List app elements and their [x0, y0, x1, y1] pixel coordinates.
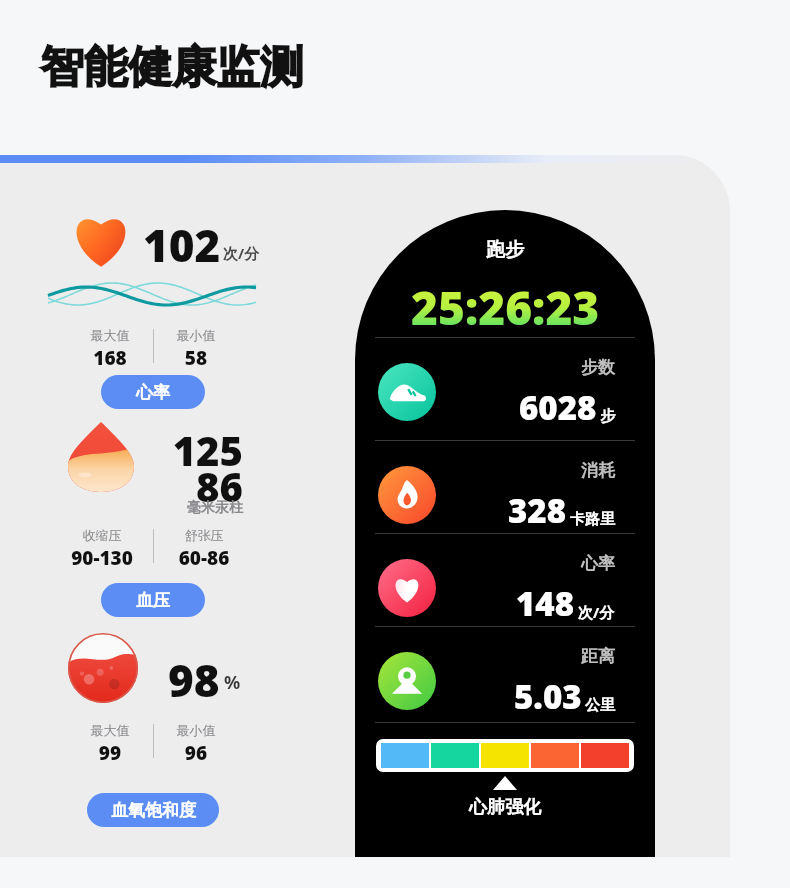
staticText: 步	[600, 407, 615, 426]
button[interactable]: 血氧饱和度	[87, 793, 219, 827]
staticText: 最小值	[161, 722, 231, 738]
staticText: 90-130	[59, 545, 145, 571]
staticText: 125	[145, 423, 243, 477]
staticText: 96	[161, 740, 231, 766]
other: 距离	[378, 652, 436, 710]
button[interactable]: 距离	[355, 636, 655, 726]
staticText: 5.03	[514, 674, 582, 719]
staticText: 步数	[455, 357, 615, 378]
staticText: 102	[143, 215, 221, 275]
staticText: 148	[516, 581, 575, 626]
staticText: 25:26:23	[411, 276, 600, 339]
button[interactable]: 血压	[101, 583, 205, 617]
staticText: 收缩压	[59, 527, 145, 543]
staticText: 99	[75, 740, 145, 766]
staticText: 卡路里	[570, 510, 615, 529]
button[interactable]: 步数	[355, 347, 655, 437]
button[interactable]: 心率	[355, 543, 655, 633]
staticText: 血压	[136, 590, 170, 611]
button[interactable]: 消耗	[355, 450, 655, 540]
staticText: 最小值	[161, 327, 231, 343]
staticText: 98	[168, 650, 220, 710]
staticText: 328	[508, 488, 567, 533]
other: 消耗	[378, 466, 436, 524]
staticText: 毫米汞柱	[145, 499, 243, 517]
staticText: 心肺强化	[355, 796, 655, 819]
staticText: 6028	[519, 385, 597, 430]
staticText: %	[224, 670, 241, 695]
staticText: 60-86	[161, 545, 247, 571]
other: 心率	[378, 559, 436, 617]
staticText: 168	[75, 345, 145, 371]
staticText: 心率	[455, 553, 615, 574]
staticText: 智能健康监测	[40, 40, 304, 95]
staticText: 次/分	[223, 243, 260, 263]
staticText: 86	[145, 459, 243, 513]
staticText: 血氧饱和度	[111, 800, 196, 821]
button[interactable]	[380, 743, 630, 768]
staticText: 公里	[585, 696, 615, 715]
staticText: 最大值	[75, 327, 145, 343]
staticText: 距离	[455, 646, 615, 667]
staticText: 次/分	[578, 602, 615, 622]
staticText: 消耗	[455, 460, 615, 481]
staticText: 58	[161, 345, 231, 371]
staticText: 跑步	[355, 238, 655, 262]
staticText: 舒张压	[161, 527, 247, 543]
other: 步数	[378, 363, 436, 421]
staticText: 最大值	[75, 722, 145, 738]
staticText: 心率	[136, 382, 170, 403]
button[interactable]: 心率	[101, 375, 205, 409]
